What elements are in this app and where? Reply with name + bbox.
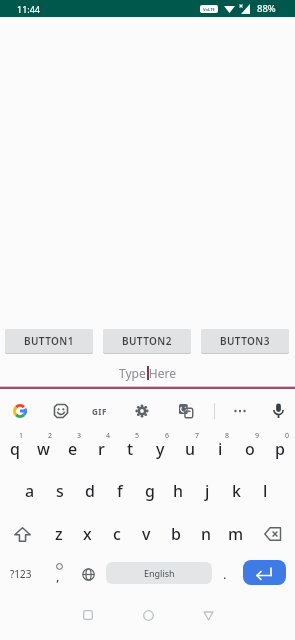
button[interactable] (74, 560, 102, 588)
staticText: e (68, 438, 78, 460)
button[interactable] (243, 560, 286, 585)
button[interactable]: r (87, 428, 116, 470)
staticText: l (263, 480, 268, 502)
staticText: 5 (135, 431, 140, 441)
button[interactable]: t (116, 428, 145, 470)
staticText: y (156, 438, 165, 460)
staticText: BUTTON3 (220, 334, 270, 348)
button[interactable]: m (221, 512, 251, 556)
button[interactable]: c (102, 512, 131, 556)
staticText: d (85, 480, 95, 502)
staticText: j (205, 480, 210, 502)
staticText: 1 (19, 431, 24, 441)
staticText: 7 (195, 431, 200, 441)
staticText: 9 (255, 431, 260, 441)
button[interactable]: BUTTON3 (201, 329, 289, 353)
staticText: 0 (285, 431, 290, 441)
staticText: 88% (257, 2, 276, 15)
button[interactable]: f (105, 470, 135, 512)
staticText: g (145, 480, 155, 502)
button[interactable]: e (58, 428, 87, 470)
staticText: u (185, 438, 196, 460)
staticText: q (10, 438, 20, 460)
button[interactable]: p (265, 428, 295, 470)
staticText: t (127, 438, 134, 460)
staticText: p (275, 438, 285, 460)
staticText: English (144, 567, 175, 579)
staticText: VoLTE (203, 7, 215, 12)
button[interactable] (13, 404, 27, 418)
staticText: s (56, 480, 64, 502)
staticText: i (218, 438, 223, 460)
staticText: b (171, 523, 181, 545)
button[interactable]: g (135, 470, 164, 512)
button[interactable]: Type Here (0, 353, 295, 389)
staticText: a (25, 480, 35, 502)
button[interactable]: w (29, 428, 58, 470)
staticText: f (117, 480, 123, 502)
button[interactable]: j (193, 470, 222, 512)
staticText: 3 (77, 431, 82, 441)
staticText: m (228, 523, 244, 545)
button[interactable]: English (106, 562, 212, 584)
staticText: ?123 (10, 567, 32, 581)
staticText: . (223, 565, 227, 583)
button[interactable]: n (191, 512, 221, 556)
button[interactable] (135, 404, 149, 418)
staticText: k (232, 480, 241, 502)
button[interactable] (203, 611, 214, 621)
staticText: BUTTON1 (24, 334, 74, 348)
staticText: n (201, 523, 212, 545)
staticText: 2 (48, 431, 53, 441)
button[interactable]: o (235, 428, 265, 470)
button[interactable] (271, 403, 286, 419)
button[interactable] (179, 404, 193, 418)
button[interactable] (83, 610, 93, 620)
button[interactable]: d (75, 470, 105, 512)
staticText: GIF (92, 406, 107, 417)
staticText: BUTTON2 (122, 334, 172, 348)
staticText: v (142, 523, 151, 545)
button[interactable]: u (175, 428, 205, 470)
button[interactable] (54, 404, 68, 418)
staticText: 11:44 (17, 3, 41, 15)
button[interactable]: h (164, 470, 193, 512)
staticText: 6 (165, 431, 170, 441)
button[interactable]: s (45, 470, 75, 512)
staticText: Type Here (119, 365, 176, 381)
staticText: 8 (225, 431, 230, 441)
button[interactable]: k (222, 470, 251, 512)
staticText: h (173, 480, 184, 502)
button[interactable]: i (205, 428, 235, 470)
staticText: c (113, 523, 121, 545)
button[interactable]: . (214, 560, 236, 588)
button[interactable] (0, 512, 44, 556)
button[interactable]: ?123 (2, 560, 40, 588)
button[interactable] (233, 404, 247, 418)
staticText: w (37, 438, 50, 460)
button[interactable]: b (161, 512, 191, 556)
staticText: r (98, 438, 105, 460)
button[interactable] (251, 512, 295, 556)
button[interactable]: a (15, 470, 45, 512)
staticText: 4 (106, 431, 111, 441)
button[interactable]: BUTTON1 (5, 329, 93, 353)
button[interactable]: y (145, 428, 175, 470)
button[interactable]: q (0, 428, 29, 470)
button[interactable]: z (44, 512, 73, 556)
button[interactable]: v (131, 512, 161, 556)
button[interactable]: l (251, 470, 280, 512)
button[interactable]: x (73, 512, 102, 556)
button[interactable]: , (44, 560, 72, 588)
button[interactable]: BUTTON2 (103, 329, 191, 353)
staticText: , (56, 567, 60, 585)
staticText: x (83, 523, 92, 545)
staticText: o (245, 438, 255, 460)
button[interactable] (143, 610, 154, 621)
button[interactable]: GIF (88, 403, 110, 419)
staticText: z (55, 523, 63, 545)
